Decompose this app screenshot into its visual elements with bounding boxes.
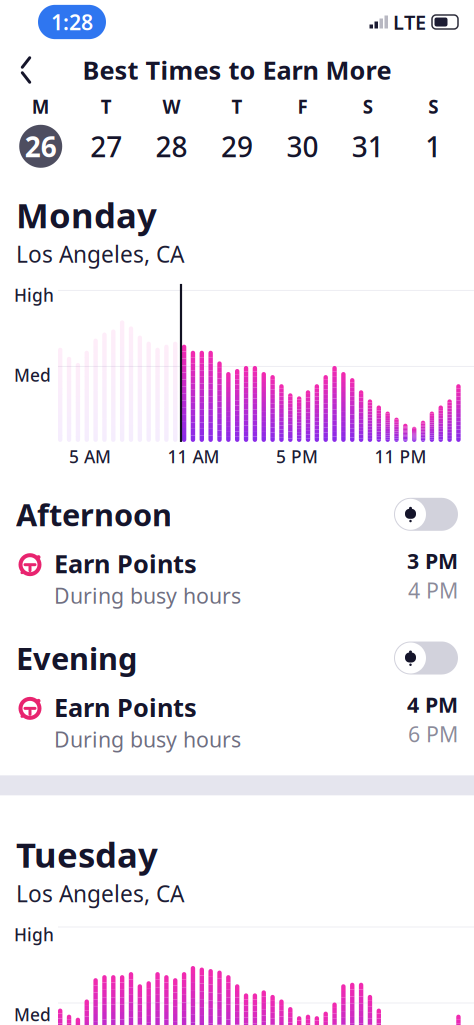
- staticText: 5 AM: [69, 445, 111, 468]
- staticText: F: [297, 94, 307, 119]
- staticText: During busy hours: [54, 725, 241, 753]
- staticText: 11 PM: [374, 445, 426, 468]
- staticText: 6 PM: [408, 720, 458, 748]
- button[interactable]: M: [8, 94, 73, 168]
- staticText: M: [32, 94, 50, 119]
- staticText: 28: [156, 128, 188, 165]
- staticText: 26: [25, 128, 57, 165]
- staticText: 31: [352, 128, 384, 165]
- staticText: Los Angeles, CA: [16, 239, 184, 269]
- button[interactable]: T: [204, 94, 270, 168]
- staticText: T: [231, 94, 242, 119]
- button[interactable]: F: [270, 94, 335, 168]
- button[interactable]: Notifications off: [394, 641, 458, 674]
- staticText: LTE: [393, 9, 426, 35]
- button[interactable]: S: [401, 94, 466, 168]
- staticText: 30: [286, 128, 318, 165]
- staticText: Monday: [16, 192, 157, 238]
- button[interactable]: S: [335, 94, 400, 168]
- button[interactable]: Notifications off: [394, 498, 458, 531]
- staticText: S: [363, 94, 373, 119]
- staticText: 4 PM: [408, 576, 458, 604]
- staticText: Best Times to Earn More: [82, 53, 391, 87]
- staticText: 1:28: [51, 8, 93, 36]
- staticText: 27: [90, 128, 122, 165]
- staticText: Afternoon: [16, 494, 172, 535]
- staticText: Earn Points: [54, 690, 197, 724]
- staticText: During busy hours: [54, 581, 241, 610]
- staticText: Tuesday: [16, 831, 158, 877]
- staticText: T: [101, 94, 112, 119]
- button[interactable]: W: [139, 94, 204, 168]
- staticText: Med: [14, 1003, 51, 1025]
- button[interactable]: Earn Points: [0, 690, 474, 753]
- staticText: High: [14, 923, 54, 946]
- staticText: 1: [425, 128, 441, 165]
- staticText: 5 PM: [276, 445, 318, 468]
- staticText: 29: [221, 128, 253, 165]
- staticText: 4 PM: [407, 690, 458, 719]
- staticText: High: [14, 283, 54, 306]
- staticText: W: [163, 94, 181, 119]
- button[interactable]: Back: [4, 50, 48, 90]
- staticText: Los Angeles, CA: [16, 878, 184, 908]
- staticText: Evening: [16, 638, 137, 678]
- staticText: 11 AM: [167, 445, 219, 468]
- button[interactable]: T: [73, 94, 139, 168]
- staticText: S: [428, 94, 438, 119]
- button[interactable]: Earn Points: [0, 547, 474, 610]
- staticText: Earn Points: [54, 547, 197, 580]
- staticText: 3 PM: [407, 547, 458, 575]
- staticText: Med: [14, 363, 51, 386]
